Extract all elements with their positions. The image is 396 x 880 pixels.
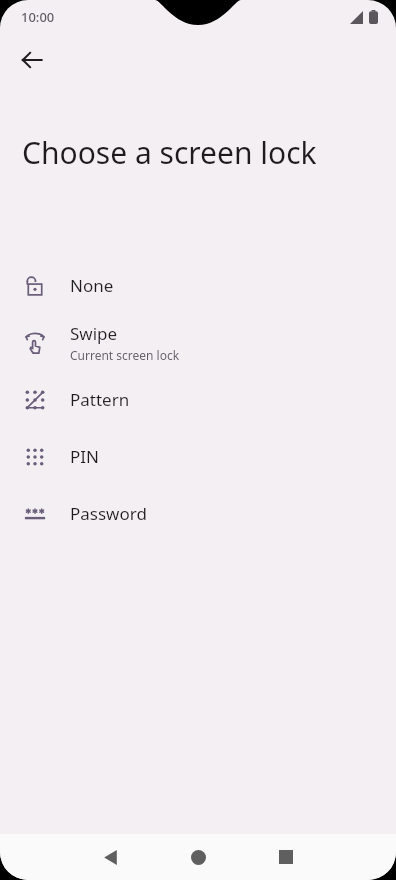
staticText: Choose a screen lock <box>22 132 374 173</box>
button[interactable]: PIN <box>0 428 396 485</box>
button[interactable]: Pattern <box>0 371 396 428</box>
button[interactable]: Recent apps <box>262 834 310 880</box>
staticText: Pattern <box>70 388 130 411</box>
staticText: Current screen lock <box>70 347 180 363</box>
button[interactable]: Password <box>0 485 396 542</box>
staticText: Password <box>70 502 147 525</box>
staticText: 10:00 <box>21 8 55 26</box>
button[interactable]: None <box>0 257 396 314</box>
button[interactable]: Home <box>174 834 222 880</box>
staticText: Swipe <box>70 322 118 345</box>
staticText: None <box>70 274 114 297</box>
button[interactable]: Swipe <box>0 314 396 371</box>
staticText: PIN <box>70 445 99 468</box>
button[interactable]: Back <box>86 834 134 880</box>
button[interactable]: Back <box>8 36 56 84</box>
